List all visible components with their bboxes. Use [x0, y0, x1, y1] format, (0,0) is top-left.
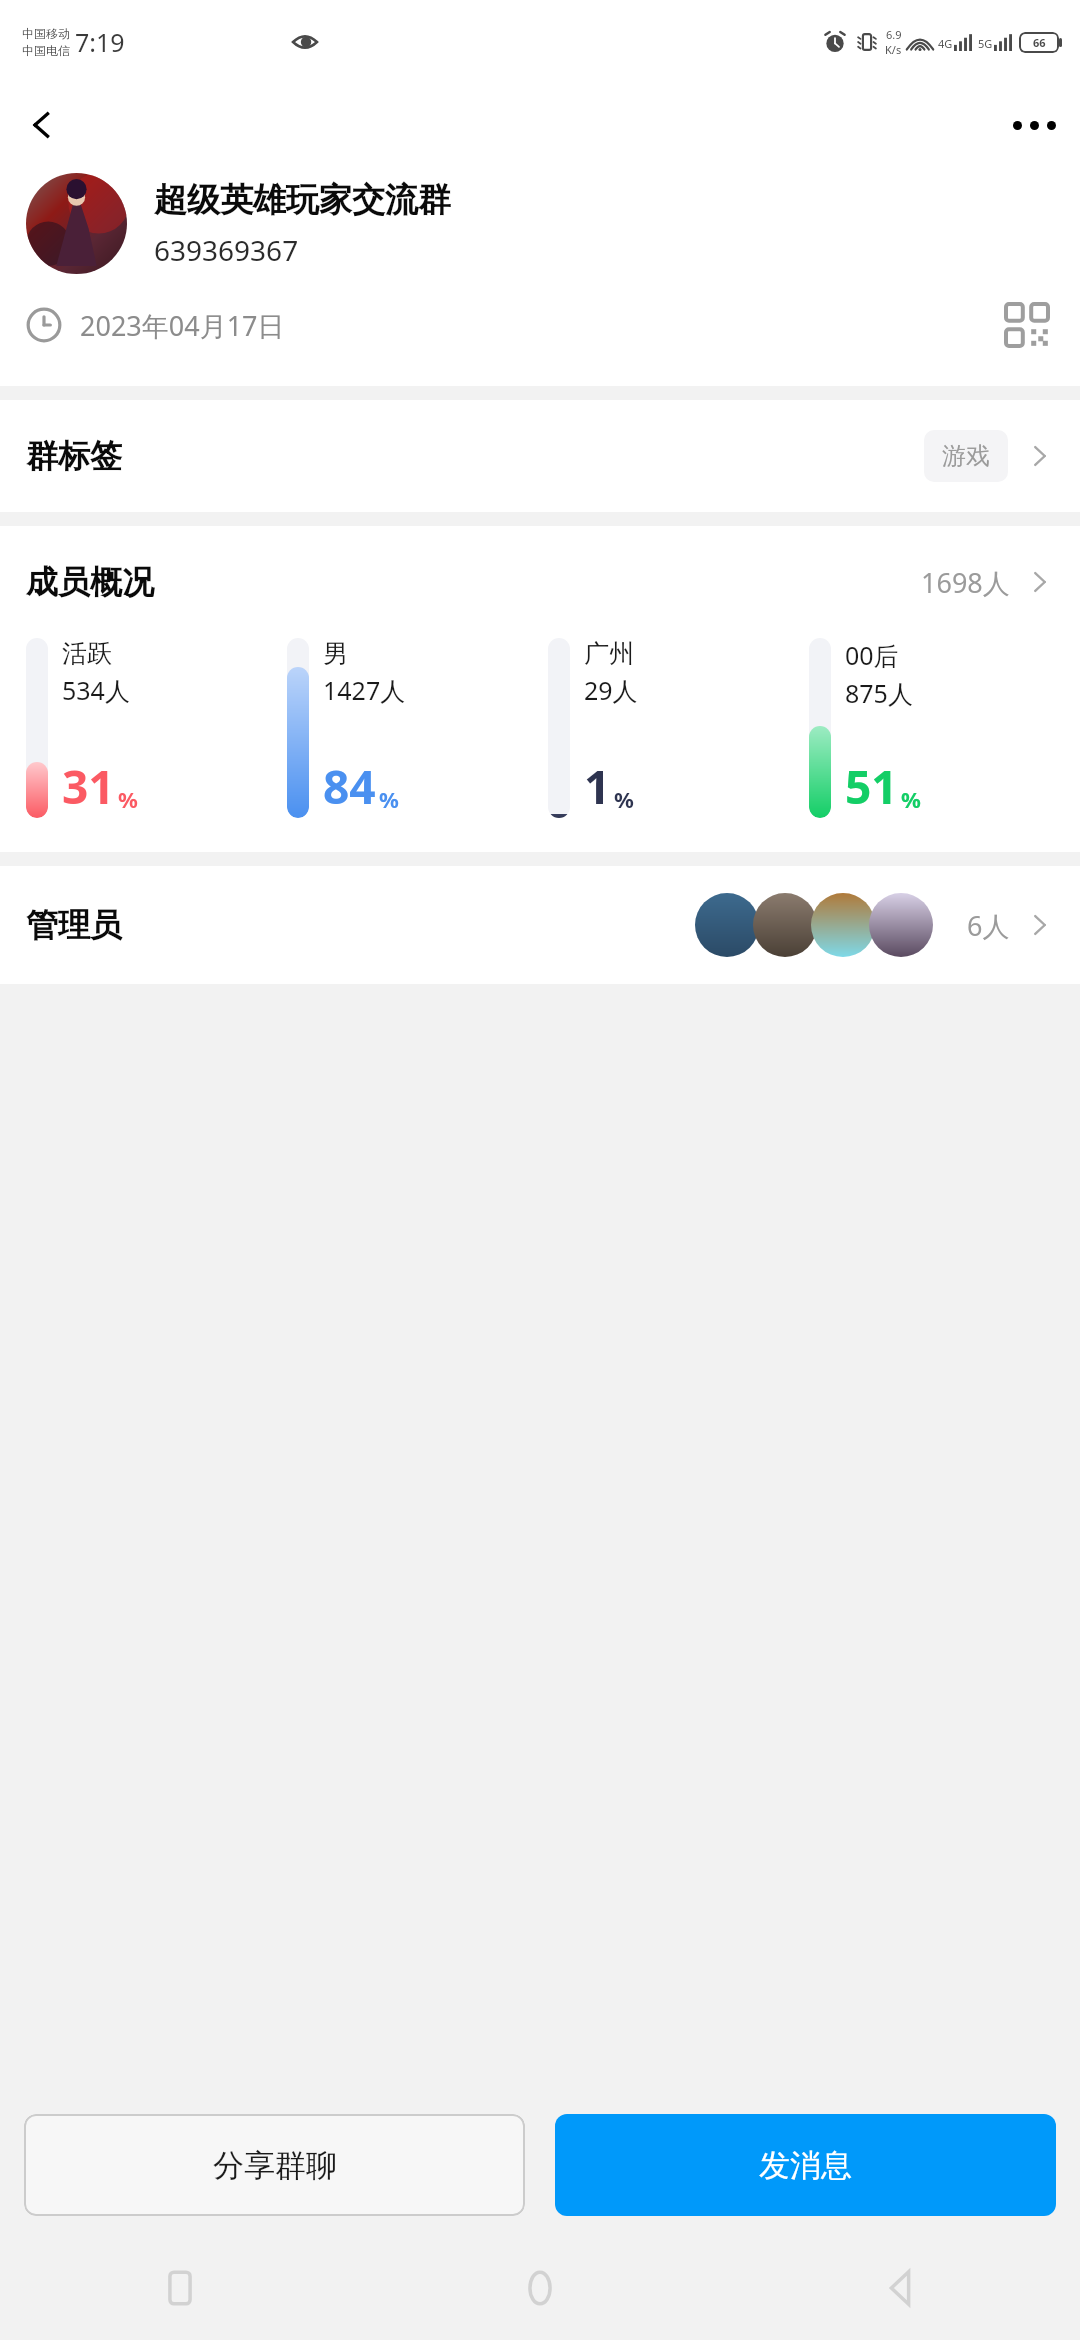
staticText: 中国电信: [22, 43, 70, 58]
button[interactable]: 超级英雄玩家交流群: [0, 167, 1080, 284]
staticText: 639369367: [154, 231, 299, 269]
staticText: 1698人: [921, 564, 1010, 601]
staticText: %: [901, 784, 921, 814]
staticText: 2023年04月17日: [80, 307, 285, 344]
staticText: 超级英雄玩家交流群: [154, 179, 451, 221]
button[interactable]: 发消息: [555, 2114, 1056, 2216]
staticText: 6.9: [886, 27, 902, 42]
staticText: 875人: [845, 676, 913, 710]
other: Eye protection: [292, 29, 318, 55]
staticText: 活跃: [62, 638, 112, 669]
staticText: %: [614, 784, 634, 814]
staticText: 66: [1033, 35, 1046, 50]
button[interactable]: More options: [1002, 93, 1066, 157]
staticText: 84: [323, 755, 376, 818]
staticText: 广州: [584, 638, 634, 669]
button[interactable]: Group QR code: [1000, 298, 1054, 352]
staticText: 管理员: [26, 905, 122, 945]
staticText: 51: [845, 755, 898, 818]
staticText: %: [379, 784, 399, 814]
staticText: 发消息: [759, 2146, 852, 2185]
button[interactable]: Back: [12, 95, 72, 155]
button[interactable]: 成员概况: [0, 526, 1080, 638]
staticText: 7:19: [75, 25, 125, 59]
button[interactable]: 群标签: [0, 400, 1080, 512]
staticText: 4G: [938, 36, 953, 51]
staticText: 中国移动: [22, 26, 70, 41]
staticText: 00后: [845, 638, 899, 672]
staticText: 1: [584, 755, 611, 818]
staticText: 534人: [62, 673, 130, 707]
staticText: 31: [62, 755, 115, 818]
staticText: 游戏: [942, 441, 990, 471]
staticText: 29人: [584, 673, 638, 707]
button[interactable]: 管理员: [0, 866, 1080, 984]
staticText: 6人: [967, 907, 1010, 944]
button[interactable]: 分享群聊: [24, 2114, 525, 2216]
staticText: 1427人: [323, 673, 406, 707]
staticText: 男: [323, 638, 348, 669]
staticText: 5G: [978, 36, 993, 51]
staticText: %: [118, 784, 138, 814]
staticText: K/s: [885, 42, 902, 57]
staticText: 群标签: [26, 436, 122, 476]
staticText: 分享群聊: [213, 2146, 337, 2185]
staticText: 成员概况: [26, 562, 154, 602]
